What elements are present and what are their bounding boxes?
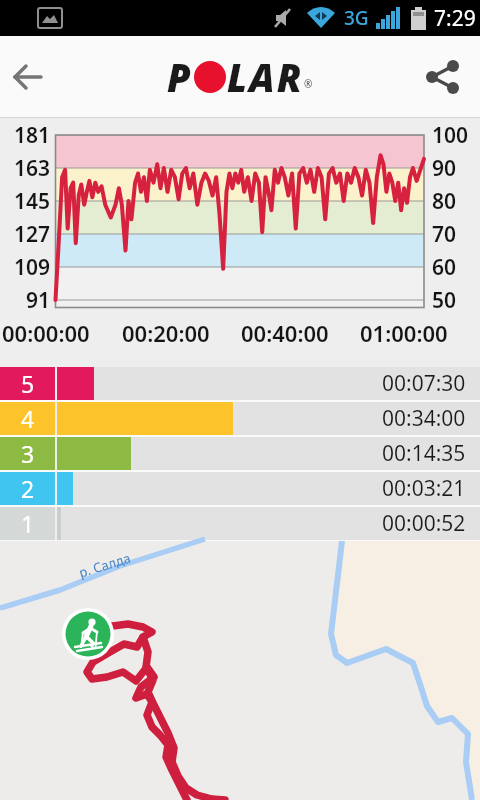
staticText: ® (304, 77, 313, 91)
staticText: 145 (0, 187, 50, 216)
button[interactable]: 4 (0, 402, 480, 435)
staticText: 60 (432, 253, 457, 282)
staticText: 91 (0, 286, 50, 315)
staticText: 00:40:00 (241, 318, 329, 348)
button[interactable] (415, 49, 471, 105)
staticText: 100 (432, 121, 469, 150)
staticText: P (167, 51, 193, 103)
staticText: LAR (227, 51, 304, 103)
staticText: 90 (432, 154, 457, 183)
staticText: 00:00:52 (382, 509, 466, 538)
button[interactable]: 3 (0, 437, 480, 470)
staticText: 00:07:30 (382, 369, 466, 398)
staticText: 01:00:00 (360, 318, 448, 348)
staticText: 80 (432, 187, 457, 216)
staticText: 1 (21, 508, 35, 539)
staticText: 00:00:00 (2, 318, 90, 348)
staticText: 00:14:35 (382, 439, 466, 468)
staticText: 70 (432, 220, 457, 249)
staticText: р. Салда (76, 548, 133, 581)
staticText: 181 (0, 121, 50, 150)
staticText: 4 (21, 403, 35, 434)
staticText: 127 (0, 220, 50, 249)
staticText: 5 (21, 368, 35, 399)
staticText: 109 (0, 253, 50, 282)
staticText: 3 (21, 438, 35, 469)
staticText: 163 (0, 154, 50, 183)
staticText: 2 (21, 473, 35, 504)
button[interactable]: 5 (0, 367, 480, 400)
staticText: 00:20:00 (122, 318, 210, 348)
button[interactable]: 2 (0, 472, 480, 505)
staticText: 50 (432, 286, 457, 315)
staticText: 3G (344, 5, 369, 31)
button[interactable]: 1 (0, 507, 480, 540)
button[interactable] (0, 49, 56, 105)
staticText: 7:29 (434, 4, 476, 33)
button[interactable]: P (167, 51, 313, 103)
button[interactable]: р. Салда (0, 541, 480, 800)
staticText: 00:34:00 (382, 404, 466, 433)
staticText: 00:03:21 (382, 474, 466, 503)
